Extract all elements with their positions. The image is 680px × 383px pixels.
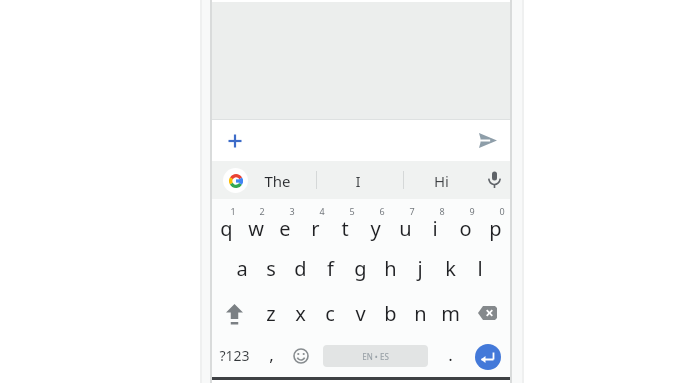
button[interactable]: ?123	[212, 330, 256, 377]
button[interactable]: j	[405, 243, 435, 286]
button[interactable]: e	[270, 199, 300, 243]
staticText: 3	[289, 205, 295, 217]
button[interactable]	[212, 286, 256, 330]
button[interactable]: .	[435, 330, 465, 377]
staticText: EN • ES	[362, 351, 389, 362]
button[interactable]	[465, 286, 510, 330]
button[interactable]: q	[212, 199, 241, 243]
button[interactable]: ,	[256, 330, 286, 377]
staticText: 7	[409, 205, 415, 217]
staticText: x	[295, 300, 306, 327]
staticText: r	[311, 215, 320, 242]
staticText: 5	[349, 205, 355, 217]
button[interactable]: n	[405, 286, 435, 330]
button[interactable]	[465, 330, 510, 377]
button[interactable]	[479, 133, 497, 148]
staticText: 1	[230, 205, 236, 217]
button[interactable]: a	[227, 243, 256, 286]
staticText: m	[441, 300, 460, 327]
button[interactable]: k	[435, 243, 465, 286]
button[interactable]: w	[241, 199, 270, 243]
button[interactable]	[286, 330, 316, 377]
button[interactable]: c	[315, 286, 345, 330]
staticText: f	[327, 255, 334, 282]
button[interactable]: I	[355, 171, 361, 191]
button[interactable]: b	[375, 286, 405, 330]
button[interactable]: g	[345, 243, 375, 286]
staticText: 0	[499, 205, 505, 217]
button[interactable]: r	[300, 199, 330, 243]
staticText: h	[384, 255, 397, 282]
button[interactable]: y	[360, 199, 390, 243]
staticText: ,	[269, 343, 274, 366]
button[interactable]: p	[480, 199, 510, 243]
button[interactable]: t	[330, 199, 360, 243]
button[interactable]: EN • ES	[316, 330, 435, 377]
staticText: w	[248, 215, 264, 242]
button[interactable]	[487, 171, 502, 189]
staticText: .	[448, 343, 453, 366]
staticText: 6	[379, 205, 385, 217]
staticText: i	[432, 215, 438, 242]
staticText: l	[477, 255, 483, 282]
staticText: t	[341, 215, 349, 242]
button[interactable]: z	[256, 286, 285, 330]
staticText: u	[399, 215, 412, 242]
staticText: o	[459, 215, 472, 242]
staticText: b	[384, 300, 397, 327]
button[interactable]: d	[285, 243, 315, 286]
button[interactable]: h	[375, 243, 405, 286]
staticText: s	[266, 255, 276, 282]
button[interactable]: s	[256, 243, 285, 286]
staticText: k	[445, 255, 456, 282]
staticText: q	[220, 215, 233, 242]
button[interactable]	[228, 134, 242, 148]
button[interactable]: The	[264, 171, 291, 191]
button[interactable]: v	[345, 286, 375, 330]
staticText: z	[266, 300, 276, 327]
button[interactable]: Hi	[434, 171, 449, 191]
staticText: e	[279, 215, 291, 242]
button[interactable]: o	[450, 199, 480, 243]
staticText: y	[370, 215, 381, 242]
staticText: a	[236, 255, 248, 282]
button[interactable]	[223, 168, 248, 193]
staticText: c	[325, 300, 335, 327]
staticText: n	[414, 300, 427, 327]
staticText: j	[417, 255, 423, 282]
staticText: 2	[259, 205, 265, 217]
staticText: g	[354, 255, 367, 282]
staticText: p	[489, 215, 502, 242]
staticText: 4	[319, 205, 325, 217]
staticText: v	[355, 300, 366, 327]
button[interactable]: i	[420, 199, 450, 243]
button[interactable]: x	[285, 286, 315, 330]
button[interactable]	[212, 120, 510, 161]
staticText: 9	[469, 205, 475, 217]
staticText: 8	[439, 205, 445, 217]
staticText: ?123	[219, 346, 250, 365]
button[interactable]: m	[435, 286, 465, 330]
staticText: d	[294, 255, 307, 282]
button[interactable]: l	[465, 243, 495, 286]
button[interactable]: f	[315, 243, 345, 286]
button[interactable]: u	[390, 199, 420, 243]
